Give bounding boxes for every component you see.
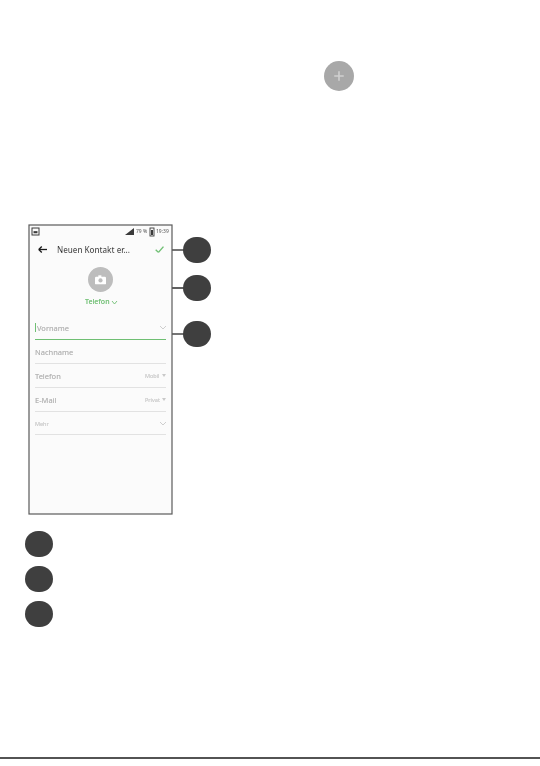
staticText: Telefon [85, 297, 110, 307]
button[interactable]: Add photo [88, 267, 113, 292]
staticText: 19:39 [156, 228, 169, 235]
button[interactable]: Callout marker [183, 237, 211, 263]
staticText: 79 % [136, 228, 148, 235]
staticText: Mobil [145, 372, 160, 379]
button[interactable]: Nachname [29, 340, 172, 364]
button[interactable]: Add [324, 61, 354, 91]
button[interactable]: Back [35, 242, 49, 256]
button[interactable]: Telefon [85, 297, 117, 307]
button[interactable]: E-Mail [29, 388, 172, 412]
button[interactable]: Callout marker [183, 275, 211, 301]
staticText: Privat [145, 396, 160, 403]
button[interactable]: Callout marker [183, 321, 211, 347]
button[interactable]: Vorname [29, 316, 172, 340]
button[interactable]: Mehr [29, 412, 172, 435]
staticText: Mehr [35, 420, 49, 427]
staticText: Vorname [37, 323, 70, 333]
button[interactable]: Callout marker [25, 566, 53, 592]
button[interactable]: Callout marker [25, 601, 53, 627]
staticText: Neuen Kontakt er... [57, 244, 130, 255]
staticText: Telefon [35, 371, 61, 381]
button[interactable]: Telefon [29, 364, 172, 388]
staticText: Nachname [35, 347, 74, 357]
staticText: E-Mail [35, 395, 57, 405]
button[interactable]: Save contact [152, 242, 166, 256]
button[interactable]: Callout marker [25, 531, 53, 557]
